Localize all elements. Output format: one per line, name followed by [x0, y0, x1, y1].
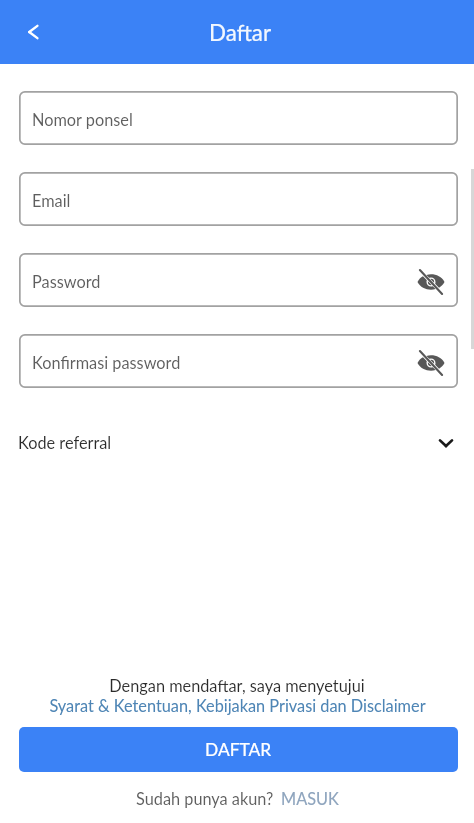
- staticText: Daftar: [209, 19, 272, 46]
- staticText: Kode referral: [18, 433, 112, 453]
- staticText: Email: [32, 191, 71, 211]
- other: Expand referral code: [431, 428, 461, 458]
- button[interactable]: Konfirmasi password: [19, 334, 458, 388]
- staticText: DAFTAR: [205, 739, 272, 760]
- button[interactable]: Back: [9, 8, 57, 56]
- button[interactable]: Kode referral: [19, 427, 458, 459]
- button[interactable]: Email: [19, 172, 458, 226]
- staticText: Sudah punya akun?: [136, 789, 274, 809]
- button[interactable]: Toggle password visibility: [412, 263, 450, 301]
- staticText: MASUK: [281, 789, 339, 809]
- button[interactable]: MASUK: [281, 789, 339, 809]
- button[interactable]: Password: [19, 253, 458, 307]
- staticText: Nomor ponsel: [32, 110, 133, 130]
- button[interactable]: Syarat & Ketentuan, Kebijakan Privasi da…: [49, 696, 426, 716]
- button[interactable]: DAFTAR: [19, 727, 458, 772]
- staticText: Password: [32, 272, 101, 292]
- button[interactable]: Nomor ponsel: [19, 91, 458, 145]
- staticText: Dengan mendaftar, saya menyetujui: [109, 676, 365, 696]
- staticText: Konfirmasi password: [32, 353, 181, 373]
- button[interactable]: Toggle password visibility: [412, 344, 450, 382]
